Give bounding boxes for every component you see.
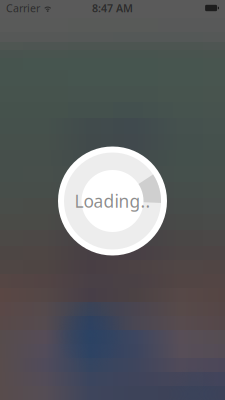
staticText: Carrier	[6, 1, 40, 15]
staticText: Loading..	[74, 189, 150, 212]
staticText: 8:47 AM	[92, 1, 133, 15]
